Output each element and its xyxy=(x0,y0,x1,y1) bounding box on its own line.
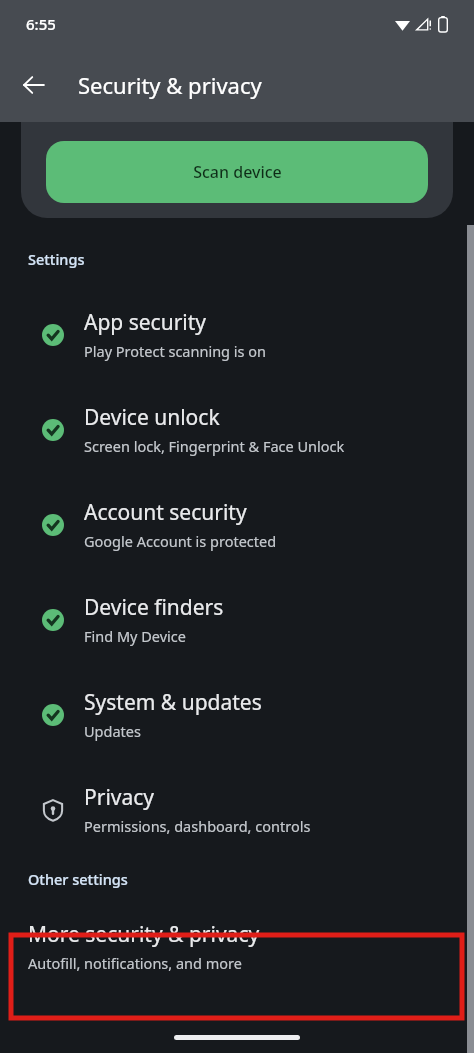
staticText: Find My Device xyxy=(84,626,186,646)
staticText: Play Protect scanning is on xyxy=(84,341,266,361)
staticText: Screen lock, Fingerprint & Face Unlock xyxy=(84,436,345,456)
staticText: Settings xyxy=(28,249,85,269)
staticText: Scan device xyxy=(193,161,282,183)
button[interactable]: App security xyxy=(0,287,474,382)
staticText: Other settings xyxy=(28,869,128,889)
button[interactable]: Back xyxy=(10,61,58,109)
staticText: Account security xyxy=(84,498,247,527)
staticText: Updates xyxy=(84,721,141,741)
button[interactable]: Device unlock xyxy=(0,382,474,477)
staticText: App security xyxy=(84,308,207,337)
staticText: Google Account is protected xyxy=(84,531,277,551)
button[interactable]: Scan device xyxy=(46,141,428,203)
button[interactable]: More security & privacy xyxy=(0,905,474,988)
button[interactable]: Device finders xyxy=(0,572,474,667)
staticText: System & updates xyxy=(84,688,262,717)
staticText: 6:55 xyxy=(26,14,56,34)
staticText: Permissions, dashboard, controls xyxy=(84,816,311,836)
staticText: Security & privacy xyxy=(78,70,262,100)
button[interactable]: Privacy xyxy=(0,762,474,857)
staticText: Privacy xyxy=(84,783,155,812)
button[interactable]: System & updates xyxy=(0,667,474,762)
staticText: More security & privacy xyxy=(28,920,260,949)
staticText: Device finders xyxy=(84,593,224,622)
staticText: Autofill, notifications, and more xyxy=(28,953,242,973)
button[interactable]: Account security xyxy=(0,477,474,572)
staticText: Device unlock xyxy=(84,403,220,432)
